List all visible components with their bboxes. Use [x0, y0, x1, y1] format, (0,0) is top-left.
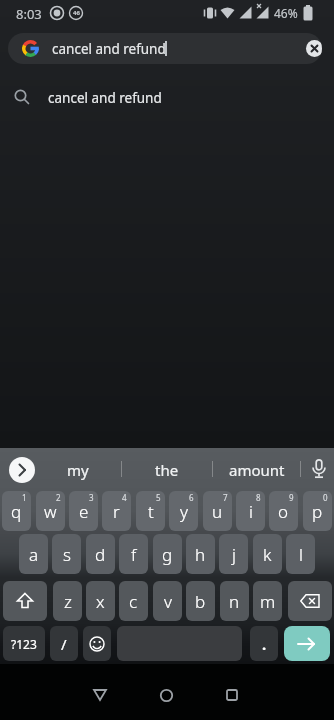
- button[interactable]: [9, 457, 35, 483]
- button[interactable]: y: [169, 491, 198, 531]
- staticText: 4: [122, 492, 127, 503]
- button[interactable]: ?123: [3, 626, 45, 661]
- button[interactable]: t: [136, 491, 165, 531]
- button[interactable]: [288, 581, 332, 621]
- staticText: m: [260, 590, 276, 613]
- staticText: 0: [323, 492, 328, 503]
- staticText: z: [64, 590, 72, 613]
- staticText: x: [96, 590, 105, 613]
- staticText: v: [164, 590, 172, 613]
- button[interactable]: f: [119, 534, 148, 574]
- button[interactable]: amount: [212, 454, 302, 486]
- button[interactable]: .: [250, 626, 278, 661]
- button[interactable]: my: [37, 454, 119, 486]
- button[interactable]: s: [52, 534, 81, 574]
- staticText: amount: [229, 460, 285, 480]
- button[interactable]: h: [186, 534, 215, 574]
- staticText: w: [44, 500, 57, 523]
- button[interactable]: x: [86, 581, 115, 621]
- button[interactable]: cancel and refund: [8, 33, 322, 64]
- staticText: 3: [89, 492, 94, 503]
- staticText: .: [262, 634, 267, 654]
- staticText: n: [229, 590, 240, 613]
- staticText: cancel and refund: [52, 40, 166, 58]
- staticText: 7: [223, 492, 228, 503]
- button[interactable]: [83, 626, 111, 661]
- button[interactable]: i: [236, 491, 265, 531]
- button[interactable]: a: [19, 534, 48, 574]
- staticText: 1: [22, 492, 27, 503]
- staticText: h: [195, 543, 206, 566]
- staticText: p: [312, 500, 323, 523]
- button[interactable]: [309, 459, 329, 479]
- staticText: f: [131, 543, 137, 566]
- button[interactable]: [220, 683, 244, 707]
- staticText: 6: [189, 492, 194, 503]
- button[interactable]: the: [123, 454, 210, 486]
- button[interactable]: [306, 40, 322, 57]
- staticText: cancel and refund: [48, 89, 162, 107]
- button[interactable]: cancel and refund: [0, 76, 334, 118]
- staticText: r: [113, 500, 120, 523]
- button[interactable]: j: [219, 534, 248, 574]
- button[interactable]: o: [269, 491, 298, 531]
- staticText: 46: [73, 9, 80, 17]
- staticText: i: [249, 500, 253, 523]
- staticText: 46%: [274, 5, 298, 21]
- staticText: c: [129, 590, 138, 613]
- staticText: g: [162, 543, 173, 566]
- staticText: j: [232, 543, 236, 566]
- button[interactable]: m: [253, 581, 282, 621]
- button[interactable]: w: [36, 491, 65, 531]
- button[interactable]: [3, 581, 47, 621]
- staticText: a: [29, 543, 39, 566]
- staticText: 8:03: [16, 5, 42, 23]
- staticText: u: [212, 500, 223, 523]
- button[interactable]: u: [203, 491, 232, 531]
- button[interactable]: g: [153, 534, 182, 574]
- button[interactable]: l: [286, 534, 315, 574]
- button[interactable]: /: [50, 626, 78, 661]
- button[interactable]: b: [186, 581, 215, 621]
- staticText: 2: [56, 492, 61, 503]
- button[interactable]: n: [220, 581, 249, 621]
- staticText: s: [63, 543, 71, 566]
- staticText: l: [299, 543, 303, 566]
- button[interactable]: [154, 683, 178, 707]
- staticText: the: [155, 460, 179, 480]
- staticText: 9: [289, 492, 294, 503]
- button[interactable]: q: [2, 491, 31, 531]
- button[interactable]: r: [102, 491, 131, 531]
- staticText: /: [61, 634, 67, 654]
- button[interactable]: k: [253, 534, 282, 574]
- staticText: k: [263, 543, 272, 566]
- button[interactable]: [284, 626, 330, 661]
- staticText: ?123: [11, 636, 37, 652]
- button[interactable]: e: [69, 491, 98, 531]
- staticText: b: [195, 590, 206, 613]
- button[interactable]: z: [53, 581, 82, 621]
- staticText: my: [67, 460, 89, 480]
- staticText: e: [79, 500, 89, 523]
- button[interactable]: [88, 683, 112, 707]
- button[interactable]: v: [153, 581, 182, 621]
- staticText: d: [95, 543, 106, 566]
- button[interactable]: c: [119, 581, 148, 621]
- staticText: 8: [256, 492, 261, 503]
- button[interactable]: d: [86, 534, 115, 574]
- staticText: y: [180, 500, 188, 523]
- staticText: 5: [156, 492, 161, 503]
- staticText: o: [278, 500, 289, 523]
- staticText: q: [11, 500, 22, 523]
- staticText: t: [148, 500, 154, 523]
- button[interactable]: p: [303, 491, 332, 531]
